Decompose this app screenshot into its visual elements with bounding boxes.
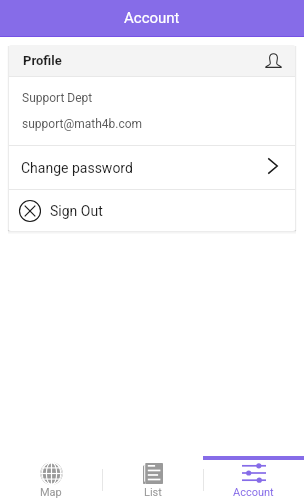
staticText: Account (124, 9, 180, 27)
other: Profile (265, 52, 282, 68)
other: Account (242, 465, 266, 481)
button[interactable]: List (102, 456, 203, 500)
other: Sign Out (19, 200, 41, 222)
button[interactable]: Change password (9, 146, 295, 189)
staticText: Change password (21, 160, 133, 176)
staticText: Support Dept (22, 91, 93, 105)
staticText: Map (40, 486, 62, 499)
button[interactable]: Sign Out (9, 190, 295, 231)
staticText: support@math4b.com (22, 117, 143, 131)
button[interactable]: Map (0, 456, 102, 500)
staticText: Account (233, 486, 274, 499)
staticText: Profile (23, 53, 62, 68)
staticText: List (144, 486, 162, 499)
other: Map (40, 462, 63, 485)
button[interactable]: Account (203, 456, 304, 500)
other: List (143, 463, 163, 484)
other: Change password (268, 158, 278, 174)
staticText: Sign Out (50, 203, 103, 219)
